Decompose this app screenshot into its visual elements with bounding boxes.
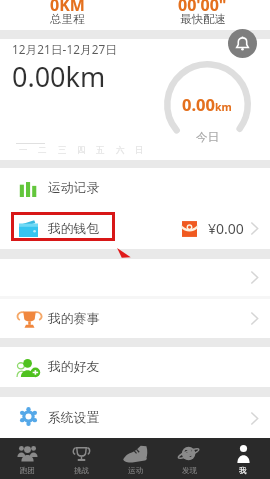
staticText: 总里程 [50,12,85,26]
button[interactable]: 运动 [108,438,162,479]
staticText: 一 [19,145,28,156]
staticText: 发现 [182,466,197,475]
staticText: 我 [239,466,247,475]
staticText: km [215,100,232,114]
staticText: 今日 [196,130,219,144]
button[interactable]: 0KM [0,0,135,30]
staticText: 运动 [128,466,143,475]
button[interactable]: 挑战 [54,438,108,479]
button[interactable]: 三 [53,144,72,156]
staticText: 0.00 [182,93,215,115]
button[interactable]: 发现 [162,438,216,479]
staticText: 最快配速 [180,12,226,26]
staticText: ¥0.00 [208,219,244,238]
button[interactable]: 六 [111,144,130,156]
staticText: 三 [58,145,67,156]
button[interactable]: 我 [216,438,270,479]
staticText: 跑团 [20,466,35,475]
button[interactable]: More [0,258,270,297]
staticText: 系统设置 [48,410,100,426]
button[interactable]: 日 [130,144,149,156]
button[interactable]: 00'00" [135,0,270,30]
button[interactable]: 我的赛事 [0,299,270,338]
staticText: 六 [116,145,125,156]
button[interactable]: 运动记录 [0,168,270,208]
other: More [250,270,259,285]
staticText: 日 [135,145,144,156]
button[interactable]: 四 [72,144,91,156]
staticText: 五 [96,145,105,156]
staticText: 0.00km [12,58,106,95]
button[interactable]: 我的钱包 [0,208,270,249]
staticText: 我的赛事 [48,311,100,327]
button[interactable]: 我的好友 [0,347,270,387]
button[interactable]: 跑团 [0,438,54,479]
button[interactable]: 五 [91,144,110,156]
staticText: 我的钱包 [48,221,100,237]
staticText: 12月21日-12月27日 [12,41,117,57]
button[interactable]: 系统设置 [0,397,270,439]
staticText: 0KM [50,0,85,16]
staticText: 运动记录 [48,180,100,196]
button[interactable]: 二 [33,144,52,156]
staticText: 00'00" [178,0,227,16]
button[interactable]: 一 [14,144,33,156]
staticText: 四 [77,145,86,156]
staticText: 二 [38,145,47,156]
staticText: 挑战 [74,466,89,475]
button[interactable]: Notifications [228,29,257,58]
staticText: 我的好友 [48,359,100,375]
